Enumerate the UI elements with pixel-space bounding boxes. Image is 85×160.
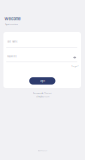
staticText: admin@bizpro.com <box>36 96 49 98</box>
button[interactable]: Forgot? <box>72 65 79 67</box>
staticText: Become a seller ? Contact <box>33 92 52 94</box>
button[interactable]: Login <box>29 77 55 85</box>
staticText: Welcome <box>5 17 21 21</box>
button[interactable]: Show password <box>73 56 76 59</box>
staticText: © BIZPRO 2021 <box>37 150 47 152</box>
staticText: Password <box>7 55 16 58</box>
staticText: Forgot? <box>72 65 79 67</box>
staticText: Sign in to continue <box>5 23 18 25</box>
staticText: User Name <box>7 41 17 43</box>
staticText: Login <box>40 80 45 82</box>
